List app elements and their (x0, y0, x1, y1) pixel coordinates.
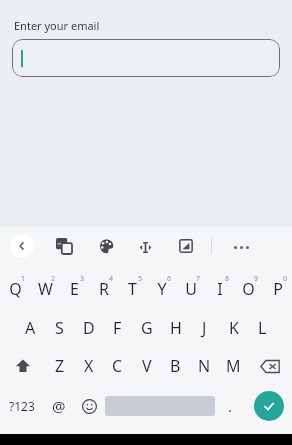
staticText: @ (52, 396, 66, 416)
staticText: H (170, 317, 182, 339)
staticText: D (83, 317, 95, 339)
staticText: Q (9, 278, 22, 300)
button[interactable]: Backspace (248, 347, 292, 385)
staticText: Z (55, 355, 65, 377)
staticText: M (226, 355, 241, 377)
staticText: 6 (167, 274, 172, 284)
staticText: 2 (51, 274, 56, 284)
button[interactable]: Q (0, 269, 30, 309)
staticText: 8 (225, 274, 230, 284)
staticText: B (170, 355, 181, 377)
button[interactable]: L (248, 309, 277, 347)
button[interactable]: . (215, 385, 246, 427)
button[interactable]: E (60, 269, 89, 309)
staticText: . (228, 396, 233, 416)
staticText: 7 (196, 274, 201, 284)
button[interactable]: Translate (54, 236, 74, 256)
staticText: X (84, 355, 94, 377)
staticText: L (258, 317, 267, 339)
button[interactable]: Y (147, 269, 176, 309)
button[interactable]: R (89, 269, 118, 309)
button[interactable]: G (132, 309, 161, 347)
button[interactable]: N (190, 347, 219, 385)
staticText: I (217, 278, 223, 300)
staticText: 3 (80, 274, 85, 284)
button[interactable]: O (234, 269, 263, 309)
staticText: J (202, 317, 207, 339)
staticText: ?123 (9, 398, 35, 414)
button[interactable]: Z (45, 347, 74, 385)
button[interactable]: W (30, 269, 60, 309)
staticText: R (99, 278, 109, 300)
button[interactable]: I (205, 269, 234, 309)
staticText: 1 (21, 274, 26, 284)
staticText: W (38, 278, 53, 300)
staticText: T (128, 278, 137, 300)
staticText: O (242, 278, 255, 300)
staticText: E (70, 278, 79, 300)
staticText: C (112, 355, 123, 377)
button[interactable]: Back (10, 234, 34, 258)
button[interactable]: K (219, 309, 248, 347)
button[interactable]: U (176, 269, 205, 309)
staticText: Y (157, 278, 167, 300)
staticText: U (185, 278, 197, 300)
button[interactable]: H (161, 309, 190, 347)
staticText: G (141, 317, 153, 339)
button[interactable]: ?123 (0, 385, 43, 427)
button[interactable] (12, 39, 280, 77)
staticText: 0 (283, 274, 288, 284)
staticText: Enter your email (14, 18, 100, 33)
button[interactable]: Emoji (74, 385, 105, 427)
button[interactable]: @ (43, 385, 74, 427)
button[interactable]: More options (230, 236, 252, 258)
button[interactable]: Text editing (134, 236, 156, 258)
button[interactable]: Resize keyboard (176, 236, 196, 256)
staticText: S (55, 317, 64, 339)
staticText: 4 (109, 274, 114, 284)
button[interactable]: T (118, 269, 147, 309)
button[interactable]: V (132, 347, 161, 385)
button[interactable]: M (219, 347, 248, 385)
button[interactable]: F (103, 309, 132, 347)
button[interactable]: A (16, 309, 45, 347)
staticText: A (25, 317, 36, 339)
button[interactable]: S (45, 309, 74, 347)
staticText: 5 (138, 274, 143, 284)
button[interactable]: X (74, 347, 103, 385)
button[interactable]: P (263, 269, 292, 309)
staticText: F (113, 317, 122, 339)
button[interactable]: J (190, 309, 219, 347)
staticText: V (142, 355, 152, 377)
button[interactable]: Enter (254, 391, 284, 421)
button[interactable]: D (74, 309, 103, 347)
button[interactable]: C (103, 347, 132, 385)
button[interactable]: Themes (96, 236, 116, 256)
staticText: N (198, 355, 211, 377)
button[interactable]: Shift (0, 347, 45, 385)
staticText: 9 (254, 274, 259, 284)
button[interactable]: B (161, 347, 190, 385)
staticText: K (229, 317, 239, 339)
staticText: P (273, 278, 283, 300)
